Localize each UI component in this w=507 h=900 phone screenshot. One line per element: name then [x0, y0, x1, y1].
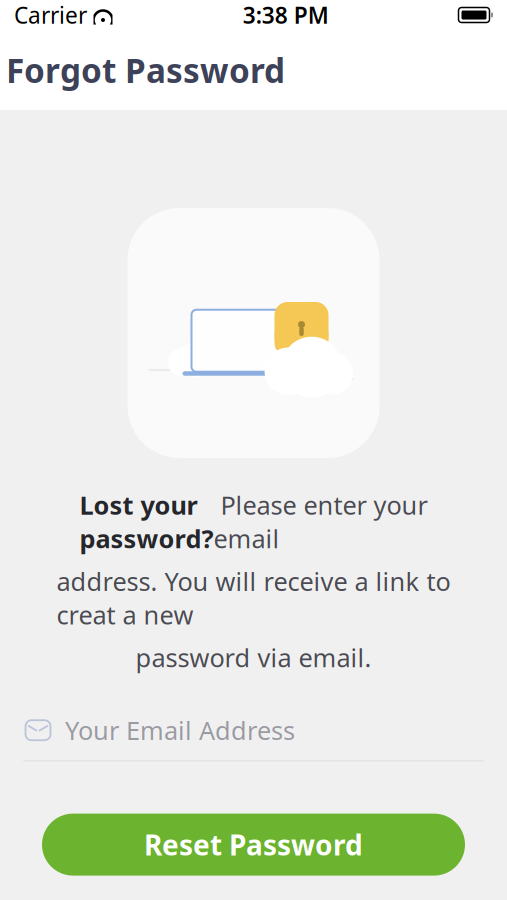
staticText: Your Email Address	[65, 713, 295, 747]
staticText: password via email.	[135, 641, 371, 674]
button[interactable]: Reset Password	[42, 814, 465, 876]
staticText: address. You will receive a link to crea…	[56, 564, 450, 632]
staticText: Forgot Password	[6, 48, 285, 92]
staticText: Please enter your email	[213, 488, 427, 555]
staticText: Lost your password?	[79, 488, 213, 555]
staticText: 3:38 PM	[243, 0, 329, 30]
staticText: Reset Password	[144, 826, 363, 863]
staticText: Carrier	[14, 0, 87, 30]
button[interactable]: Your Email Address	[23, 710, 484, 762]
